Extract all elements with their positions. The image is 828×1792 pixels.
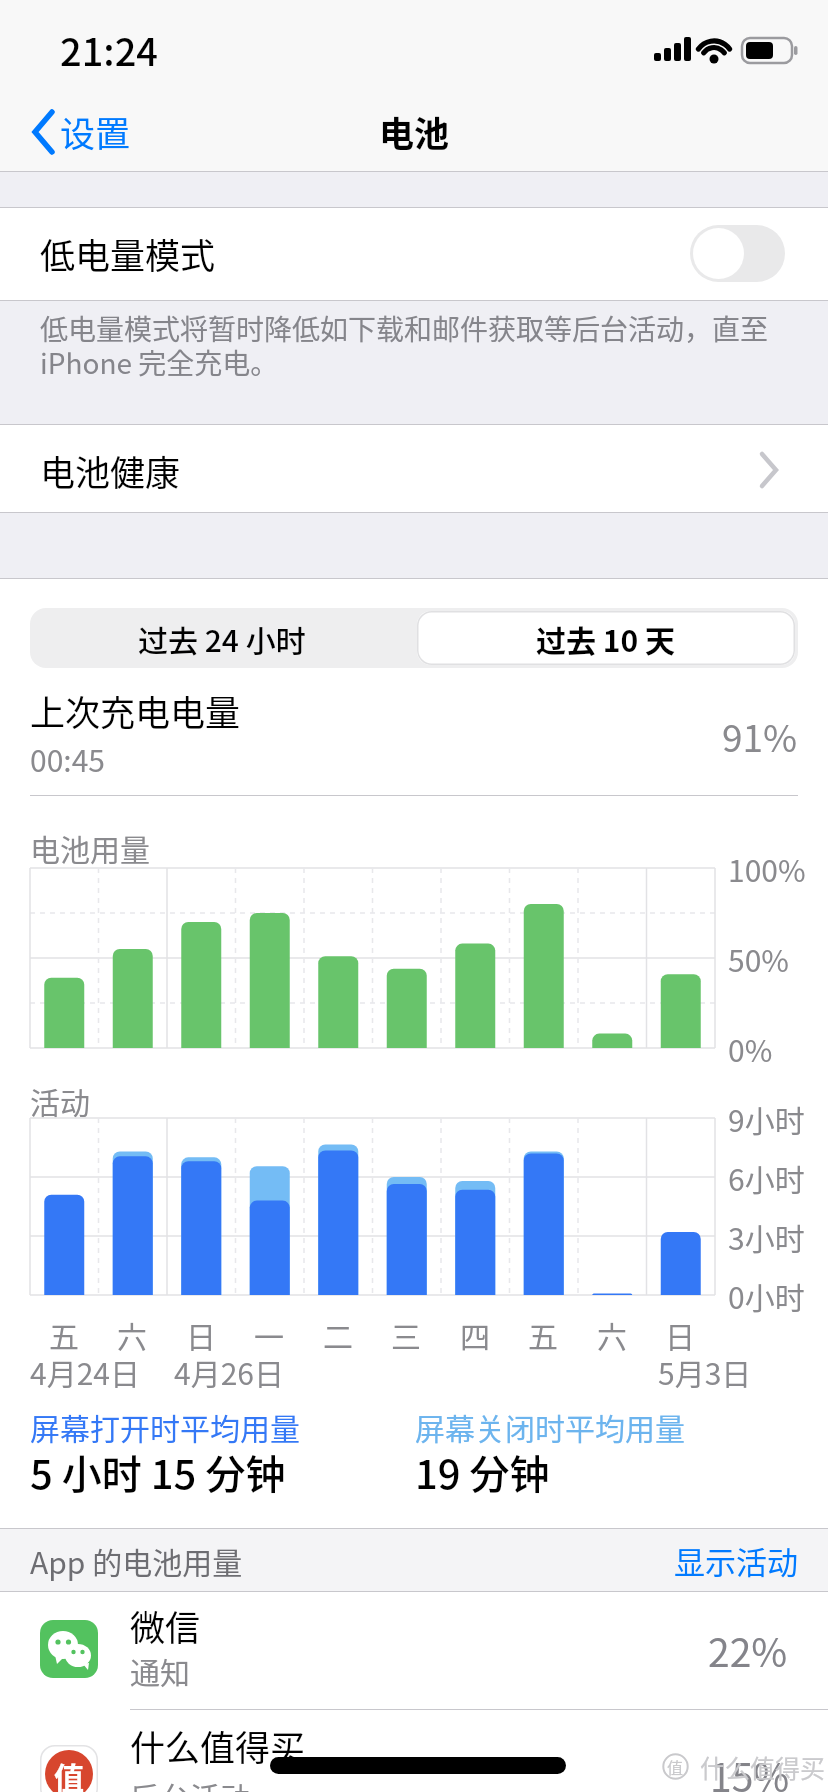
staticText: 值 bbox=[667, 1755, 684, 1778]
button[interactable] bbox=[417, 611, 795, 665]
button[interactable] bbox=[690, 225, 785, 282]
staticText: 六 bbox=[117, 1313, 147, 1356]
staticText: 5 小时 15 分钟 bbox=[30, 1443, 286, 1501]
staticText: 电池用量 bbox=[30, 826, 150, 869]
staticText: 微信 bbox=[130, 1600, 201, 1651]
staticText: 15% bbox=[710, 1747, 790, 1792]
staticText: 过去 24 小时 bbox=[138, 617, 306, 660]
staticText: 9小时 bbox=[728, 1097, 805, 1140]
button[interactable] bbox=[0, 1710, 828, 1792]
staticText: 活动 bbox=[30, 1079, 90, 1122]
button[interactable] bbox=[0, 1592, 828, 1710]
staticText: 19 分钟 bbox=[415, 1443, 550, 1501]
staticText: 四 bbox=[460, 1313, 490, 1356]
staticText: 低电量模式将暂时降低如下载和邮件获取等后台活动，直至 bbox=[40, 308, 769, 349]
staticText: 五 bbox=[528, 1313, 558, 1356]
button[interactable] bbox=[30, 608, 414, 668]
staticText: 22% bbox=[708, 1622, 788, 1678]
staticText: 电池健康 bbox=[40, 445, 181, 496]
staticText: 电池 bbox=[379, 106, 450, 157]
staticText: 3小时 bbox=[728, 1215, 805, 1258]
staticText: 91% bbox=[722, 709, 798, 763]
staticText: 4月24日 bbox=[30, 1350, 140, 1393]
staticText: 通知 bbox=[130, 1649, 190, 1692]
staticText: 设置 bbox=[60, 106, 131, 157]
staticText: 六 bbox=[597, 1313, 627, 1356]
staticText: 50% bbox=[728, 937, 789, 980]
staticText: 一 bbox=[254, 1313, 284, 1356]
staticText: 00:45 bbox=[30, 737, 105, 780]
staticText: iPhone 完全充电。 bbox=[40, 342, 279, 383]
button[interactable] bbox=[0, 208, 828, 300]
staticText: 二 bbox=[323, 1313, 353, 1356]
staticText: 过去 10 天 bbox=[536, 617, 676, 660]
staticText: 5月3日 bbox=[658, 1350, 752, 1393]
staticText: 什么值得买 bbox=[700, 1749, 826, 1785]
staticText: 屏幕关闭时平均用量 bbox=[415, 1405, 685, 1448]
button[interactable] bbox=[0, 425, 828, 512]
staticText: 0% bbox=[728, 1027, 773, 1070]
staticText: 100% bbox=[728, 847, 806, 890]
staticText: 后台活动 bbox=[130, 1774, 250, 1792]
staticText: App 的电池用量 bbox=[30, 1539, 243, 1582]
staticText: 值 bbox=[54, 1754, 84, 1792]
staticText: 上次充电电量 bbox=[30, 685, 241, 736]
staticText: 日 bbox=[665, 1313, 695, 1356]
staticText: 日 bbox=[186, 1313, 216, 1356]
staticText: 屏幕打开时平均用量 bbox=[30, 1405, 300, 1448]
staticText: 什么值得买 bbox=[130, 1720, 306, 1771]
staticText: 21:24 bbox=[60, 22, 158, 77]
button[interactable]: 显示活动 bbox=[598, 1535, 798, 1585]
staticText: 三 bbox=[391, 1313, 421, 1356]
staticText: 显示活动 bbox=[674, 1538, 798, 1583]
staticText: 低电量模式 bbox=[40, 228, 216, 279]
staticText: 4月26日 bbox=[174, 1350, 284, 1393]
staticText: 五 bbox=[49, 1313, 79, 1356]
staticText: 0小时 bbox=[728, 1274, 805, 1317]
staticText: 6小时 bbox=[728, 1156, 805, 1199]
